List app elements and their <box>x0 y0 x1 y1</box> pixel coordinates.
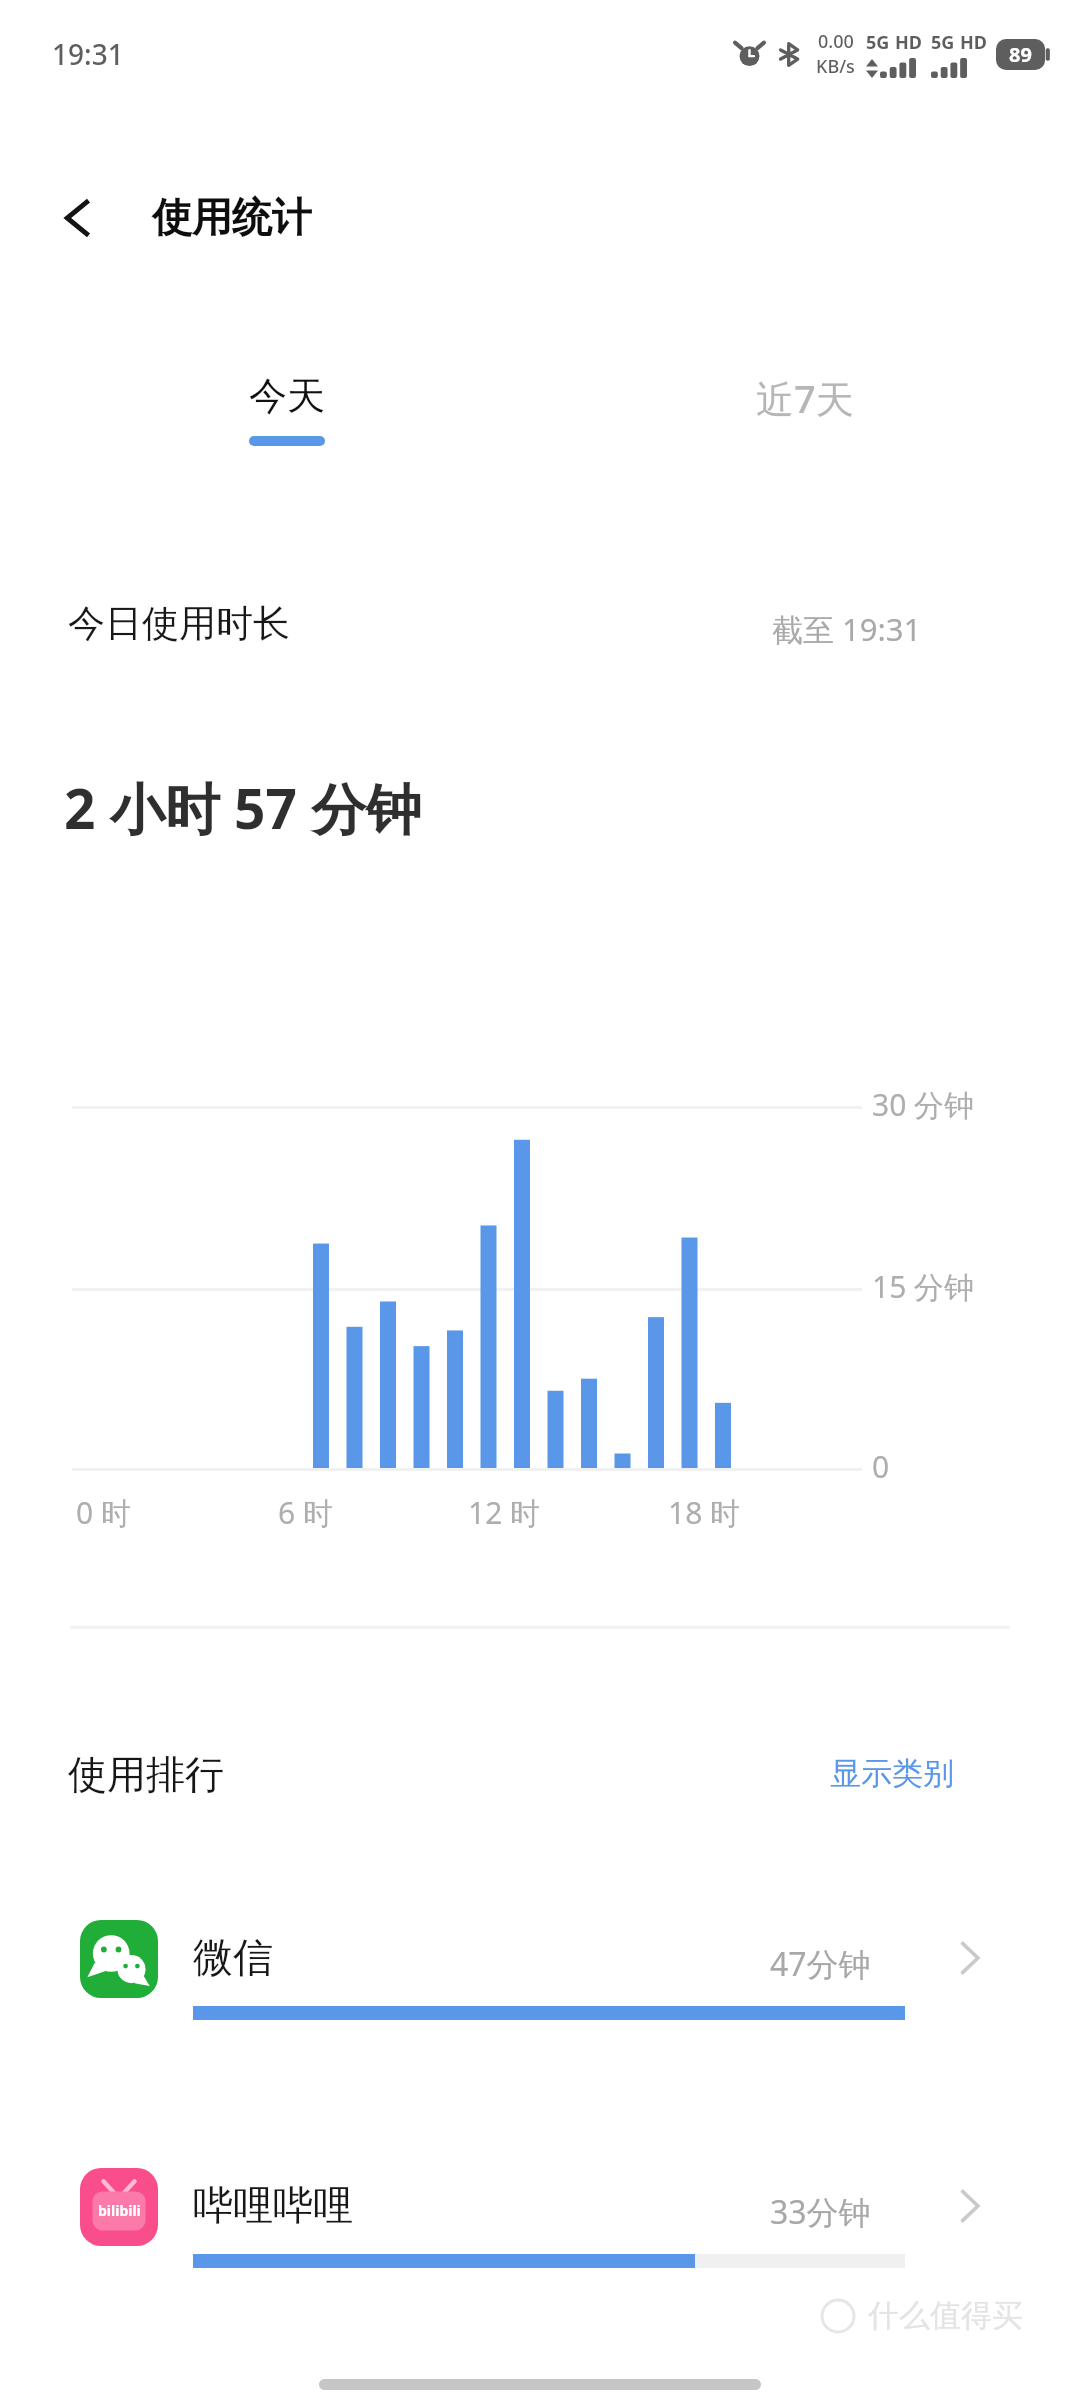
button[interactable]: 微信 <box>0 1890 1080 2080</box>
staticText: 0 <box>872 1446 890 1487</box>
staticText: 33分钟 <box>770 2190 871 2234</box>
staticText: 89 <box>1009 41 1032 68</box>
staticText: KB/s <box>816 54 855 79</box>
staticText: 显示类别 <box>830 1754 954 1793</box>
staticText: HD <box>895 30 922 55</box>
staticText: 使用排行 <box>68 1750 224 1799</box>
staticText: 30 分钟 <box>872 1084 975 1125</box>
staticText: 5G <box>931 30 955 55</box>
staticText: 2 小时 57 分钟 <box>64 770 422 845</box>
button[interactable]: 近7天 <box>730 372 880 482</box>
button[interactable]: bilibili <box>0 2138 1080 2328</box>
staticText: 截至 19:31 <box>772 608 922 650</box>
button[interactable]: 今天 <box>222 372 352 482</box>
staticText: 18 时 <box>668 1492 741 1533</box>
button[interactable]: 显示类别 <box>830 1754 954 1793</box>
staticText: 5G <box>866 30 890 55</box>
staticText: 今日使用时长 <box>68 600 290 647</box>
staticText: 什么值得买 <box>868 2296 1023 2335</box>
staticText: 15 分钟 <box>872 1266 975 1307</box>
staticText: 0 时 <box>76 1492 131 1533</box>
staticText: 19:31 <box>52 35 124 73</box>
staticText: 12 时 <box>468 1492 541 1533</box>
staticText: 哔哩哔哩 <box>193 2180 353 2230</box>
staticText: 今天 <box>249 372 325 420</box>
staticText: 使用统计 <box>152 192 312 242</box>
staticText: bilibili <box>98 2201 141 2220</box>
staticText: 6 时 <box>278 1492 333 1533</box>
button[interactable]: 返回 <box>40 180 116 256</box>
staticText: 近7天 <box>756 372 854 424</box>
staticText: 微信 <box>193 1932 273 1982</box>
staticText: HD <box>960 30 987 55</box>
staticText: 47分钟 <box>770 1942 871 1986</box>
staticText: 0.00 <box>818 29 854 54</box>
